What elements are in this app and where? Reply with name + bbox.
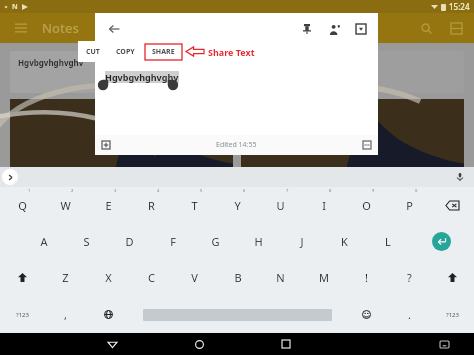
button[interactable]: W	[44, 187, 87, 223]
button[interactable]: CUT	[78, 44, 108, 60]
button[interactable]: B	[216, 259, 259, 296]
staticText: X	[105, 270, 112, 285]
button[interactable]: Shift	[0, 259, 44, 296]
staticText: K	[341, 234, 348, 249]
button[interactable]: K	[323, 223, 366, 259]
button[interactable]: Voice input	[452, 169, 468, 185]
staticText: D	[125, 234, 134, 249]
button[interactable]: I	[302, 187, 345, 223]
button[interactable]: U	[259, 187, 302, 223]
staticText: Y	[234, 198, 241, 213]
button[interactable]: ,	[44, 296, 87, 333]
staticText: Notes	[42, 19, 79, 37]
staticText: Share Text	[208, 46, 255, 58]
button[interactable]: L	[366, 223, 409, 259]
staticText: 1	[28, 188, 31, 193]
button[interactable]: Hgvbgvhghvghv	[10, 51, 233, 93]
staticText: N	[12, 2, 18, 12]
button[interactable]: Home	[188, 333, 210, 355]
button[interactable]: Search	[416, 18, 436, 38]
button[interactable]: Emoji	[345, 296, 388, 333]
staticText: N	[276, 270, 285, 285]
button[interactable]: F	[151, 223, 194, 259]
button[interactable]: Shift	[431, 259, 474, 296]
button[interactable]	[10, 99, 233, 189]
button[interactable]	[241, 51, 464, 93]
staticText: 15:24	[449, 1, 470, 12]
staticText: E	[105, 198, 112, 213]
staticText: Z	[62, 270, 69, 285]
button[interactable]: Back	[101, 333, 123, 355]
staticText: 3	[114, 188, 117, 193]
staticText: ?123	[16, 311, 29, 319]
button[interactable]: J	[280, 223, 323, 259]
button[interactable]: O	[345, 187, 388, 223]
button[interactable]: Archive	[352, 20, 370, 38]
staticText: Q	[18, 198, 27, 213]
button[interactable]: ?123	[431, 296, 474, 333]
button[interactable]: N	[259, 259, 302, 296]
button[interactable]: ?123	[0, 296, 44, 333]
button[interactable]: Expand suggestions	[2, 169, 18, 185]
staticText: A	[40, 234, 48, 249]
button[interactable]: COPY	[108, 44, 143, 60]
button[interactable]: Space	[130, 296, 345, 333]
button[interactable]: R	[130, 187, 173, 223]
staticText: 5	[200, 188, 203, 193]
staticText: ,	[64, 307, 67, 322]
staticText: U	[276, 198, 285, 213]
button[interactable]: !	[345, 259, 388, 296]
staticText: J	[300, 234, 304, 249]
button[interactable]: P	[388, 187, 431, 223]
staticText: L	[385, 234, 391, 249]
button[interactable]: ?	[388, 259, 431, 296]
button[interactable]: Note action	[368, 311, 382, 325]
staticText: O	[362, 198, 371, 213]
button[interactable]: Q	[0, 187, 44, 223]
button[interactable]: H	[237, 223, 280, 259]
staticText: SHARE	[152, 47, 175, 57]
staticText: 4	[157, 188, 160, 193]
button[interactable]: Z	[44, 259, 87, 296]
staticText: .	[408, 307, 411, 322]
staticText: Edited 14:55	[216, 140, 257, 150]
button[interactable]: Add collaborator	[325, 20, 343, 38]
staticText: G	[211, 234, 220, 249]
button[interactable]: Add	[99, 138, 113, 152]
button[interactable]: Pin note	[298, 20, 316, 38]
button[interactable]: G	[194, 223, 237, 259]
button[interactable]: X	[87, 259, 130, 296]
button[interactable]: Backspace	[431, 187, 474, 223]
staticText: 2	[71, 188, 74, 193]
button[interactable]: Note action	[440, 311, 454, 325]
button[interactable]: Recent apps	[275, 333, 297, 355]
button[interactable]	[241, 99, 464, 189]
button[interactable]: Change language	[87, 296, 130, 333]
button[interactable]: T	[173, 187, 216, 223]
button[interactable]: C	[130, 259, 173, 296]
button[interactable]: Open navigation drawer	[10, 17, 32, 39]
staticText: CUT	[86, 47, 100, 57]
button[interactable]: Hide keyboard	[433, 333, 455, 355]
button[interactable]: Switch view	[446, 18, 466, 38]
staticText: Hgvbgvhghvghv	[18, 57, 84, 68]
button[interactable]: Enter	[409, 223, 474, 259]
staticText: M	[319, 270, 329, 285]
staticText: !	[365, 270, 368, 285]
button[interactable]: More options	[360, 138, 374, 152]
staticText: ?123	[446, 311, 459, 319]
staticText: P	[406, 198, 413, 213]
button[interactable]: S	[65, 223, 108, 259]
button[interactable]: V	[173, 259, 216, 296]
button[interactable]: Back	[103, 18, 125, 40]
button[interactable]: E	[87, 187, 130, 223]
button[interactable]: M	[302, 259, 345, 296]
button[interactable]: SHARE	[145, 44, 182, 60]
button[interactable]: A	[22, 223, 65, 259]
button[interactable]: Y	[216, 187, 259, 223]
button[interactable]: .	[388, 296, 431, 333]
staticText: 0	[415, 188, 418, 193]
button[interactable]: D	[108, 223, 151, 259]
